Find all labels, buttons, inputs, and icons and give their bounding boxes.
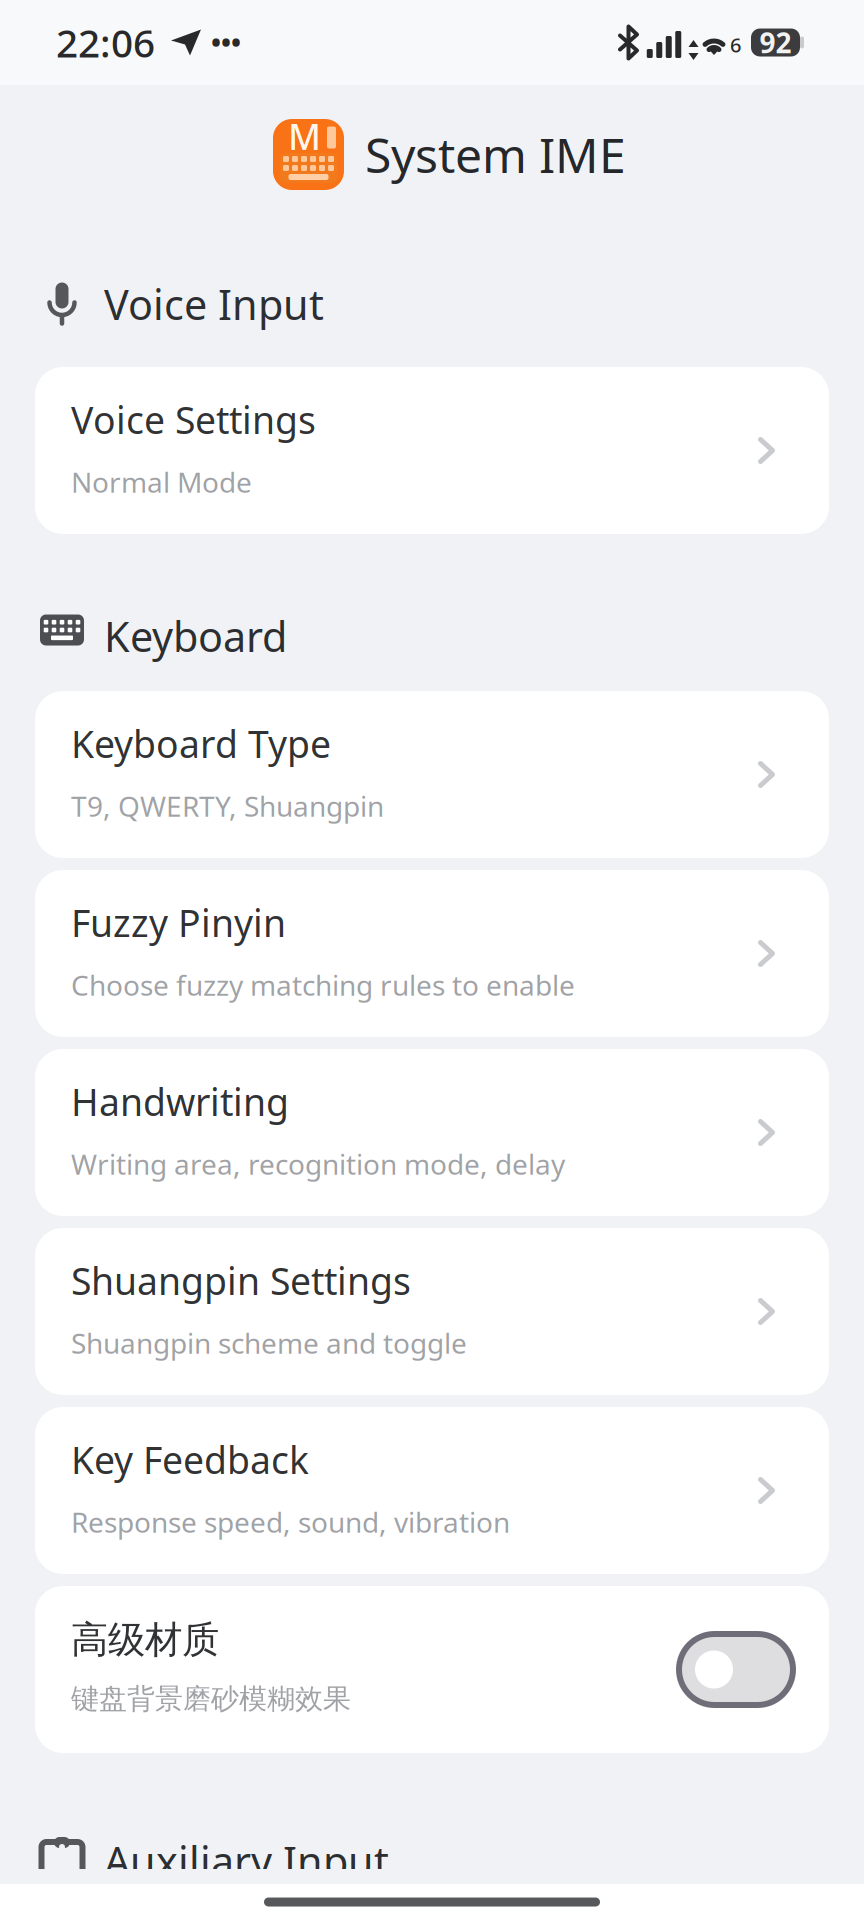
staticText: Writing area, recognition mode, delay <box>71 1145 565 1182</box>
staticText: Keyboard Type <box>71 719 331 768</box>
staticText: 6 <box>730 31 741 58</box>
button[interactable]: Keyboard Type <box>35 691 829 858</box>
staticText: ••• <box>211 25 241 60</box>
staticText: Fuzzy Pinyin <box>71 898 286 947</box>
staticText: Shuangpin Settings <box>71 1256 411 1305</box>
staticText: 高级材质 <box>71 1617 219 1663</box>
staticText: Choose fuzzy matching rules to enable <box>71 966 575 1003</box>
staticText: T9, QWERTY, Shuangpin <box>71 787 384 824</box>
staticText: 92 <box>759 24 791 61</box>
staticText: 键盘背景磨砂模糊效果 <box>71 1682 351 1716</box>
button[interactable]: Voice Settings <box>35 367 829 534</box>
staticText: Voice Settings <box>71 395 316 444</box>
staticText: Response speed, sound, vibration <box>71 1503 510 1540</box>
button[interactable]: Fuzzy Pinyin <box>35 870 829 1037</box>
button[interactable]: Shuangpin Settings <box>35 1228 829 1395</box>
staticText: Shuangpin scheme and toggle <box>71 1324 467 1361</box>
staticText: 22:06 <box>56 17 155 68</box>
button[interactable]: 高级材质 <box>35 1586 829 1753</box>
staticText: M <box>288 112 321 160</box>
button[interactable]: Key Feedback <box>35 1407 829 1574</box>
staticText: System IME <box>365 123 626 186</box>
staticText: Normal Mode <box>71 463 252 500</box>
staticText: Key Feedback <box>71 1435 309 1484</box>
staticText: Voice Input <box>104 277 324 331</box>
button[interactable]: Handwriting <box>35 1049 829 1216</box>
staticText: Auxiliary Input <box>104 1834 389 1888</box>
staticText: Keyboard <box>104 609 287 663</box>
staticText: Handwriting <box>71 1077 289 1126</box>
